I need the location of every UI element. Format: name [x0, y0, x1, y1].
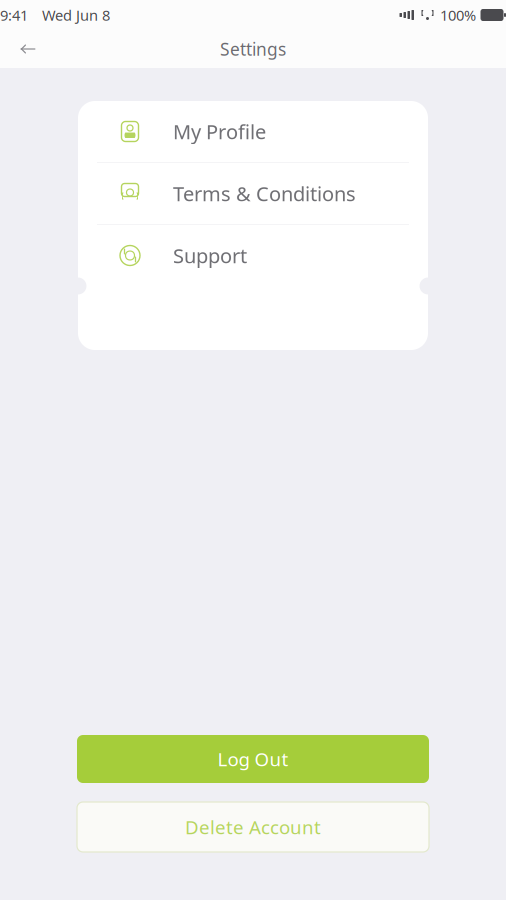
button[interactable]: Log Out [77, 735, 429, 783]
staticText: 100% [440, 5, 476, 25]
staticText: Support [173, 242, 247, 269]
button[interactable]: Delete Account [77, 802, 429, 852]
staticText: 9:41 [0, 5, 28, 25]
staticText: My Profile [173, 118, 266, 145]
button[interactable]: My Profile [78, 101, 428, 162]
button[interactable]: Terms & Conditions [78, 163, 428, 224]
staticText: Settings [220, 37, 286, 60]
button[interactable]: Support [78, 225, 428, 286]
staticText: Terms & Conditions [173, 180, 356, 207]
staticText: Delete Account [185, 815, 321, 839]
staticText: Wed Jun 8 [42, 5, 110, 25]
button[interactable]: Back [6, 30, 50, 68]
staticText: Log Out [217, 747, 288, 771]
